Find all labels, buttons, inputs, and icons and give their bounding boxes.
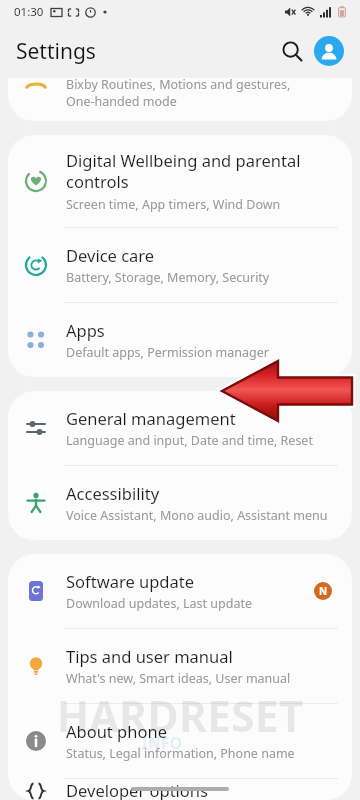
staticText: About phone xyxy=(66,720,167,742)
staticText: Digital Wellbeing and parental controls xyxy=(66,149,301,193)
button[interactable]: Accessibility xyxy=(8,466,352,540)
staticText: .INFO xyxy=(137,732,183,754)
staticText: Tips and user manual xyxy=(66,645,233,667)
staticText: Software update xyxy=(66,570,194,592)
staticText: Apps xyxy=(66,319,105,341)
button[interactable]: Software update xyxy=(8,554,352,628)
staticText: Screen time, App timers, Wind Down xyxy=(66,196,281,213)
button[interactable]: Search xyxy=(274,33,310,69)
staticText: Voice Assistant, Mono audio, Assistant m… xyxy=(66,507,328,524)
button[interactable]: Apps xyxy=(8,303,352,377)
staticText: One-handed mode xyxy=(66,93,177,110)
staticText: Download updates, Last update xyxy=(66,595,252,612)
staticText: HARDRESET xyxy=(56,686,304,745)
button[interactable]: Developer options xyxy=(8,779,352,800)
staticText: Bixby Routines, Motions and gestures, xyxy=(66,78,291,93)
staticText: Device care xyxy=(66,244,155,266)
staticText: Status, Legal information, Phone name xyxy=(66,745,295,762)
staticText: Language and input, Date and time, Reset xyxy=(66,432,313,449)
button[interactable]: About phone xyxy=(8,704,352,778)
staticText: 01:30 xyxy=(14,4,44,20)
staticText: N xyxy=(319,584,328,598)
staticText: Settings xyxy=(16,37,96,66)
staticText: Battery, Storage, Memory, Security xyxy=(66,269,270,286)
button[interactable]: Digital Wellbeing and parental controls xyxy=(8,135,352,227)
staticText: Developer options xyxy=(66,779,208,800)
button[interactable]: Account xyxy=(314,36,344,66)
staticText: What's new, Smart ideas, User manual xyxy=(66,670,291,687)
button[interactable]: Bixby Routines, Motions and gestures, xyxy=(8,78,352,121)
button[interactable]: Tips and user manual xyxy=(8,629,352,703)
staticText: General management xyxy=(66,407,236,429)
button[interactable]: General management xyxy=(8,391,352,465)
staticText: Default apps, Permission manager xyxy=(66,344,269,361)
staticText: Accessibility xyxy=(66,482,160,504)
button[interactable]: Device care xyxy=(8,228,352,302)
